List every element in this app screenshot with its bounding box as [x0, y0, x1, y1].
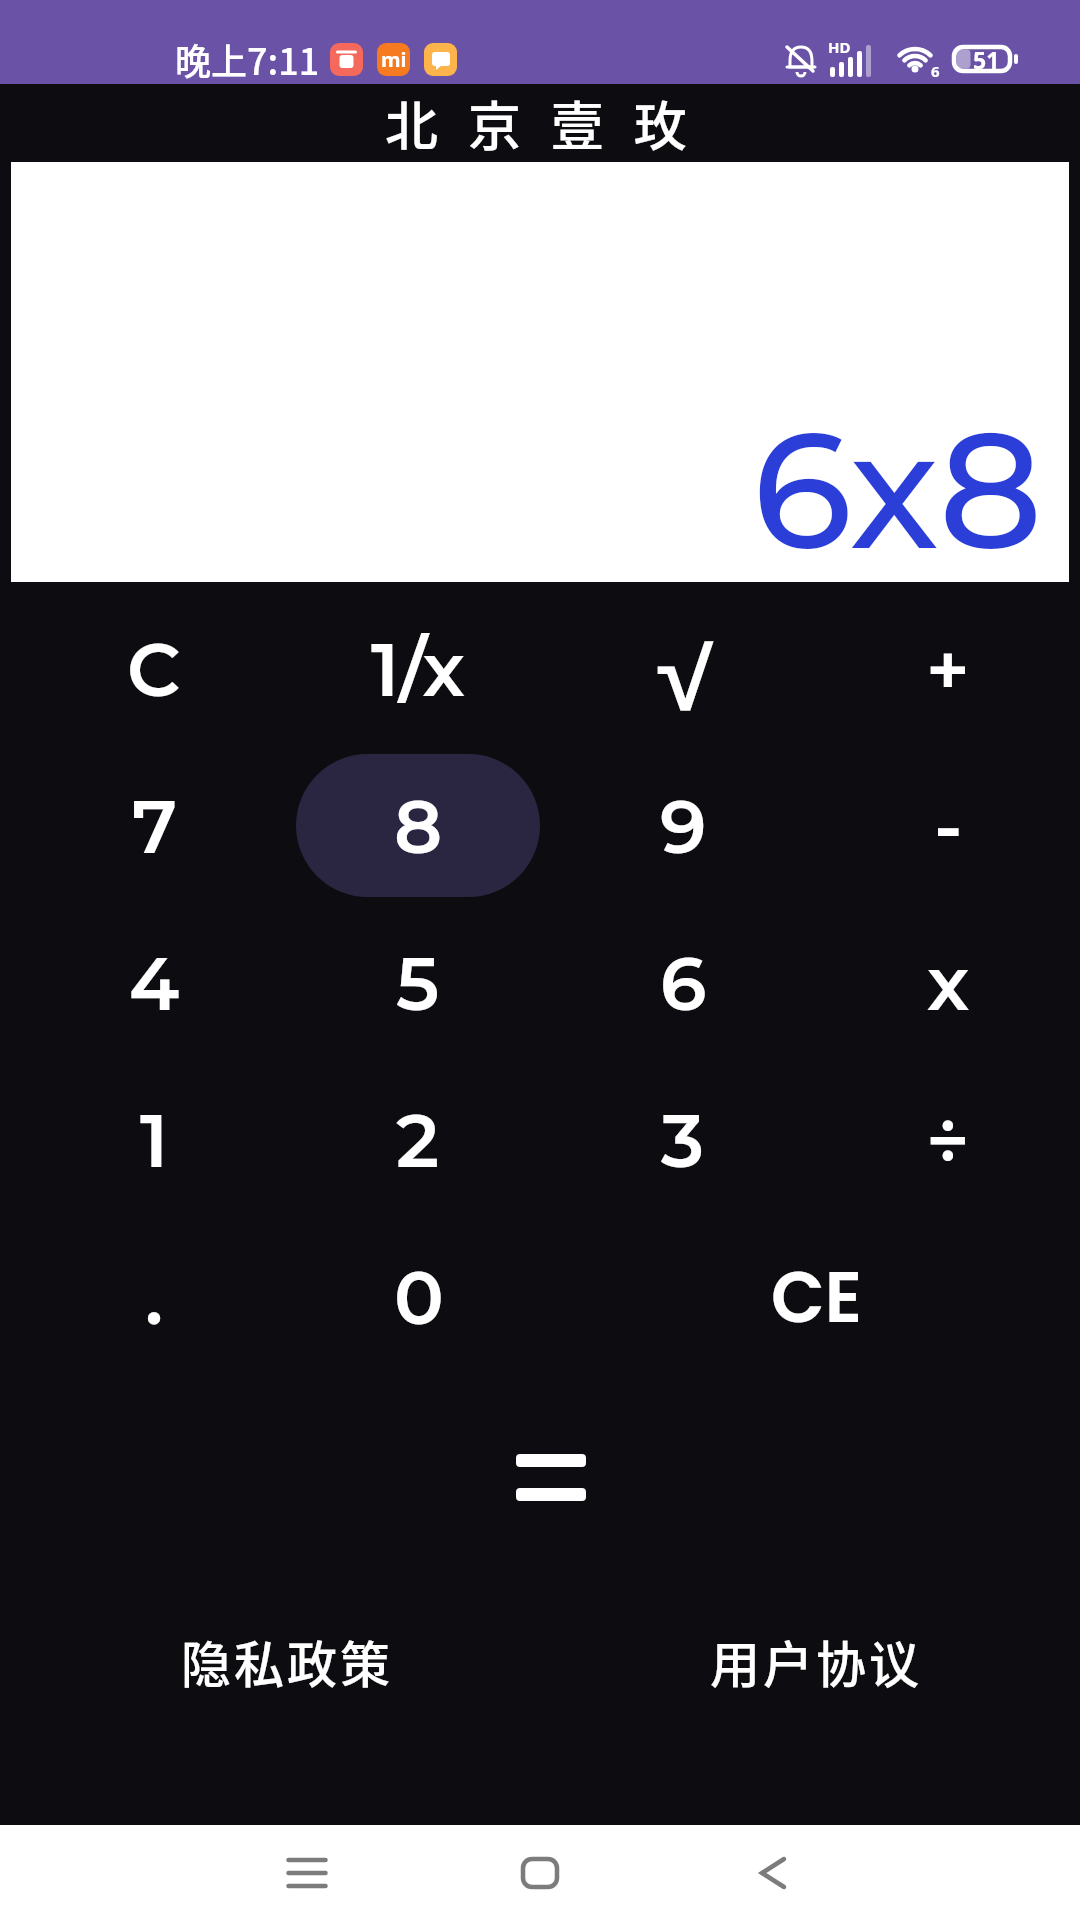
staticText: .	[145, 1252, 164, 1342]
button[interactable]: 1	[32, 1068, 276, 1211]
staticText: x	[927, 938, 970, 1028]
button[interactable]: 用户协议	[702, 1617, 930, 1705]
staticText: 6x8	[752, 391, 1043, 588]
button[interactable]: 7	[32, 754, 276, 897]
button[interactable]: 2	[296, 1068, 540, 1211]
staticText: 1/x	[371, 624, 465, 714]
button[interactable]: 1/x	[296, 597, 540, 740]
button[interactable]: C	[32, 597, 276, 740]
staticText: 1	[140, 1095, 169, 1185]
button[interactable]: .	[32, 1225, 276, 1368]
button[interactable]: 隐私政策	[173, 1617, 401, 1705]
staticText: mi	[381, 46, 407, 73]
staticText: 3	[661, 1095, 705, 1185]
staticText: 9	[660, 781, 707, 871]
staticText: 北 京 壹 玫	[385, 85, 696, 162]
staticText: -	[934, 781, 963, 871]
button[interactable]: 9	[561, 754, 805, 897]
staticText: +	[926, 624, 970, 714]
staticText: ÷	[926, 1095, 970, 1185]
button[interactable]: 5	[296, 911, 540, 1054]
button[interactable]: 0	[297, 1225, 541, 1368]
staticText: CE	[771, 1248, 862, 1346]
button[interactable]: ÷	[826, 1068, 1070, 1211]
button[interactable]: 4	[32, 911, 276, 1054]
button[interactable]: x	[826, 911, 1070, 1054]
button[interactable]: CE	[694, 1225, 938, 1368]
staticText: 晚上7:11	[175, 33, 320, 85]
button[interactable]	[518, 1851, 562, 1895]
button[interactable]	[504, 1442, 598, 1513]
button[interactable]: √	[561, 597, 805, 740]
button[interactable]	[751, 1851, 795, 1895]
staticText: 7	[132, 781, 177, 871]
staticText: 6	[660, 938, 707, 1028]
staticText: 8	[394, 781, 443, 871]
staticText: C	[127, 624, 181, 714]
button[interactable]	[285, 1851, 329, 1895]
staticText: 5	[396, 938, 440, 1028]
staticText: 隐私政策	[181, 1625, 393, 1697]
button[interactable]: 6	[561, 911, 805, 1054]
button[interactable]: -	[826, 754, 1070, 897]
button[interactable]: 3	[561, 1068, 805, 1211]
staticText: 2	[396, 1095, 440, 1185]
staticText: 0	[394, 1252, 444, 1342]
button[interactable]: +	[826, 597, 1070, 740]
button[interactable]: 8	[296, 754, 540, 897]
staticText: 用户协议	[710, 1625, 922, 1697]
staticText: HD	[828, 37, 851, 57]
staticText: √	[653, 624, 714, 714]
staticText: 51	[973, 44, 1000, 74]
staticText: 6	[931, 61, 940, 81]
staticText: 4	[129, 938, 180, 1028]
